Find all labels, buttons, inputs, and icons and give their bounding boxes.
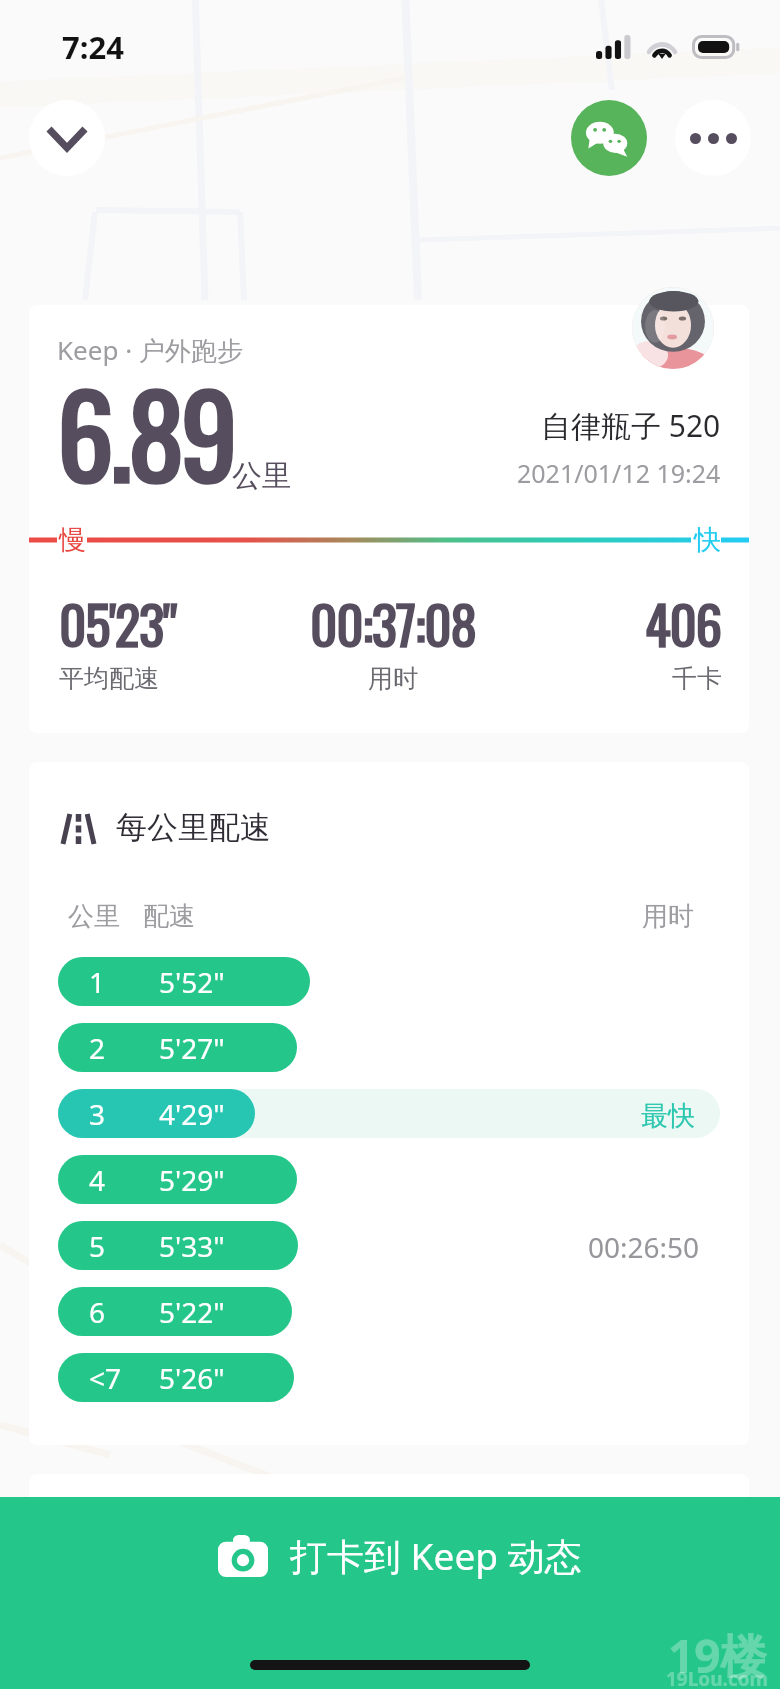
staticText: 3 [89, 1095, 106, 1133]
button[interactable]: 6 [58, 1287, 292, 1336]
staticText: 平均配速 [59, 663, 159, 694]
staticText: 千卡 [672, 663, 722, 694]
button[interactable]: 3 [58, 1089, 255, 1138]
staticText: 5'33" [159, 1227, 225, 1265]
staticText: 5'22" [159, 1293, 225, 1331]
staticText: 19Lou.com [666, 1666, 769, 1689]
staticText: 00:37:08 [310, 584, 476, 663]
button[interactable]: 5 [58, 1221, 298, 1270]
staticText: 5'52" [159, 963, 225, 1001]
button[interactable]: 打卡到 Keep 动态 [0, 1497, 780, 1689]
staticText: 5'26" [159, 1359, 225, 1397]
staticText: 5'27" [159, 1029, 225, 1067]
button[interactable]: <7 [58, 1353, 294, 1402]
button[interactable]: 2 [58, 1023, 297, 1072]
button[interactable]: 4 [58, 1155, 297, 1204]
staticText: 最快 [641, 1099, 695, 1133]
button[interactable]: More options [675, 100, 751, 176]
staticText: 7:24 [62, 26, 124, 68]
staticText: 用时 [368, 663, 418, 694]
button[interactable]: Collapse [29, 100, 105, 176]
staticText: 每公里配速 [116, 808, 271, 847]
staticText: 5 [89, 1227, 106, 1265]
staticText: 4'29" [159, 1095, 225, 1133]
staticText: 慢 [59, 523, 84, 557]
staticText: 00:26:50 [588, 1228, 700, 1266]
button[interactable]: Keep · 户外跑步 [29, 305, 749, 733]
staticText: 用时 [642, 900, 694, 933]
staticText: 自律瓶子 520 [541, 405, 721, 446]
staticText: 05'23" [59, 584, 176, 663]
staticText: 5'29" [159, 1161, 225, 1199]
staticText: 2 [89, 1029, 106, 1067]
staticText: 公里 [68, 900, 120, 933]
staticText: 配速 [143, 900, 195, 933]
staticText: Keep · 户外跑步 [57, 332, 243, 368]
button[interactable]: 1 [58, 957, 310, 1006]
staticText: 6 [89, 1293, 106, 1331]
button[interactable]: User avatar [632, 287, 714, 369]
staticText: <7 [89, 1359, 122, 1397]
staticText: 2021/01/12 19:24 [517, 456, 721, 490]
staticText: 公里 [232, 457, 292, 495]
button[interactable]: Share to WeChat [571, 100, 647, 176]
staticText: 19楼 [668, 1624, 767, 1682]
staticText: 4 [89, 1161, 106, 1199]
staticText: 6.89 [57, 347, 235, 514]
staticText: 打卡到 Keep 动态 [290, 1530, 582, 1581]
staticText: 1 [89, 963, 106, 1001]
staticText: 406 [645, 584, 722, 663]
staticText: 快 [694, 523, 719, 557]
